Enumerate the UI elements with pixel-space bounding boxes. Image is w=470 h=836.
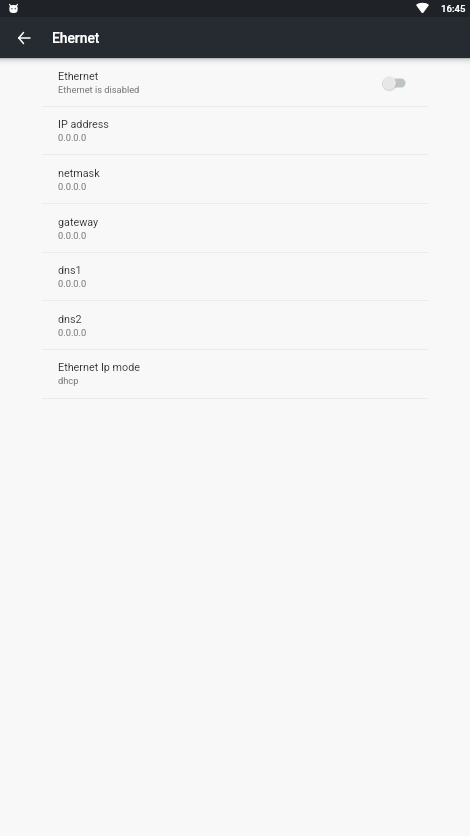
button[interactable]: Ethernet [0, 58, 470, 107]
button[interactable]: IP address [0, 106, 470, 155]
button[interactable]: Back [11, 25, 37, 51]
staticText: dhcp [58, 375, 79, 386]
staticText: Ethernet [58, 70, 99, 83]
button[interactable]: netmask [0, 155, 470, 204]
staticText: 16:45 [441, 3, 466, 14]
button[interactable]: dns2 [0, 301, 470, 350]
staticText: dns1 [58, 264, 82, 277]
staticText: 0.0.0.0 [58, 278, 87, 289]
staticText: 0.0.0.0 [58, 132, 87, 143]
staticText: IP address [58, 118, 109, 131]
staticText: Ehernet [52, 30, 100, 46]
staticText: Ethernet Ip mode [58, 361, 141, 374]
button[interactable]: gateway [0, 204, 470, 253]
button[interactable]: Ethernet toggle [382, 75, 406, 91]
staticText: 0.0.0.0 [58, 327, 87, 338]
staticText: netmask [58, 167, 100, 180]
staticText: Ethernet is disabled [58, 84, 140, 95]
staticText: gateway [58, 216, 99, 229]
button[interactable]: dns1 [0, 252, 470, 301]
staticText: 0.0.0.0 [58, 230, 87, 241]
button[interactable]: Ethernet Ip mode [0, 349, 470, 399]
staticText: dns2 [58, 313, 82, 326]
staticText: 0.0.0.0 [58, 181, 87, 192]
